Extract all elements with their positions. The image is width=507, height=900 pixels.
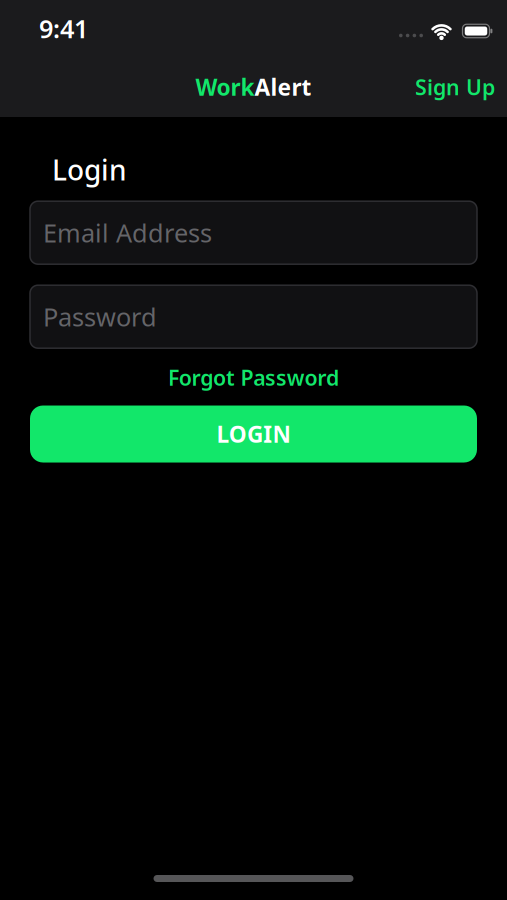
- staticText: Login: [52, 151, 127, 188]
- button[interactable]: Email Address: [30, 201, 477, 264]
- staticText: Email Address: [43, 216, 212, 249]
- staticText: Work: [195, 72, 254, 102]
- staticText: Forgot Password: [168, 363, 339, 391]
- button[interactable]: Sign Up: [415, 73, 495, 101]
- staticText: LOGIN: [216, 419, 291, 449]
- button[interactable]: Password: [30, 285, 477, 348]
- staticText: 9:41: [39, 12, 88, 45]
- button[interactable]: LOGIN: [30, 405, 477, 462]
- staticText: Alert: [254, 72, 311, 102]
- button[interactable]: Forgot Password: [168, 363, 339, 391]
- staticText: Sign Up: [415, 73, 495, 101]
- staticText: Password: [43, 300, 157, 333]
